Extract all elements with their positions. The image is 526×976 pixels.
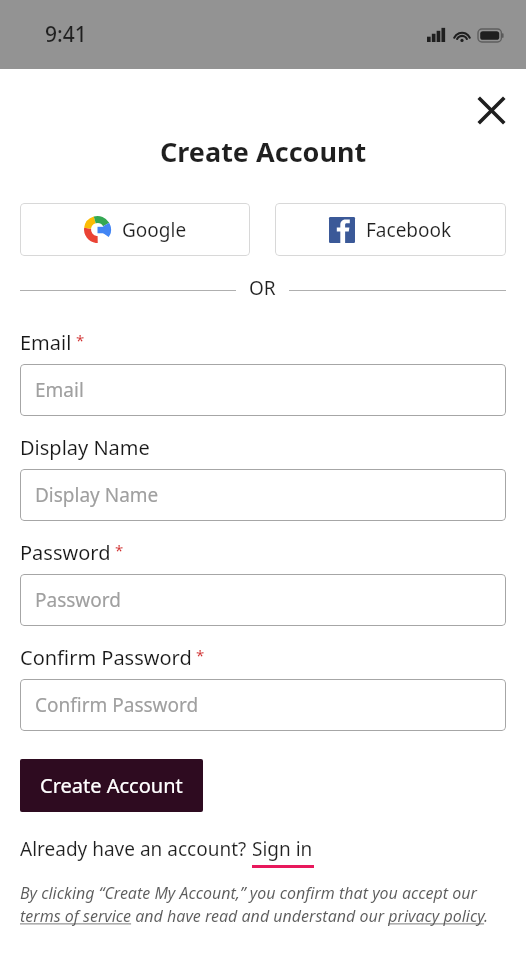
staticText: Create Account	[160, 133, 367, 170]
staticText: Facebook	[366, 217, 452, 243]
staticText: *	[196, 645, 205, 665]
staticText: 9:41	[45, 20, 87, 49]
staticText: Password	[20, 539, 111, 566]
button[interactable]: Facebook	[275, 203, 506, 256]
staticText: Already have an account?	[20, 836, 252, 862]
staticText: *	[76, 330, 85, 350]
button[interactable]: Sign in	[252, 836, 314, 868]
staticText: Email	[20, 329, 72, 356]
staticText: Password	[35, 587, 121, 613]
button[interactable]: Password	[20, 574, 506, 626]
staticText: Confirm Password	[35, 692, 199, 718]
button[interactable]: Close	[468, 87, 514, 133]
staticText: Display Name	[35, 482, 159, 508]
staticText: *	[115, 540, 124, 560]
staticText: Sign in	[252, 836, 313, 862]
button[interactable]: Email	[20, 364, 506, 416]
button[interactable]: Confirm Password	[20, 679, 506, 731]
staticText: Email	[35, 377, 84, 403]
staticText: OR	[249, 275, 276, 301]
button[interactable]: Display Name	[20, 469, 506, 521]
staticText: Confirm Password	[20, 644, 192, 671]
button[interactable]: Google	[20, 203, 250, 256]
staticText: Display Name	[20, 434, 150, 461]
staticText: Create Account	[40, 772, 183, 799]
staticText: By clicking “Create My Account,” you con…	[20, 882, 506, 927]
staticText: Google	[122, 217, 187, 243]
button[interactable]: Create Account	[20, 759, 203, 812]
